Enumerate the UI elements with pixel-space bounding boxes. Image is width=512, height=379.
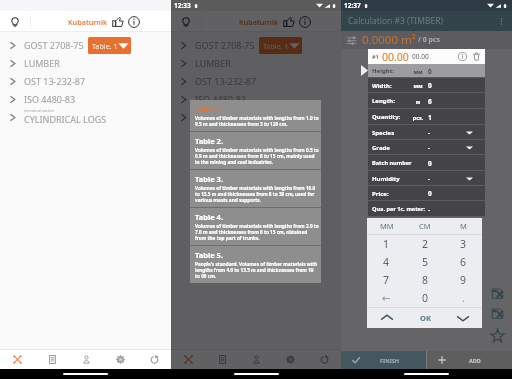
button[interactable]: MM [367, 218, 406, 234]
button[interactable]: international standard [0, 108, 171, 126]
staticText: 3 [460, 237, 467, 251]
button[interactable]: Rate [110, 14, 125, 29]
staticText: мм [408, 68, 428, 75]
button[interactable]: GOST 2708-75 [0, 36, 171, 54]
button[interactable]: LUMBER [171, 54, 341, 72]
button[interactable]: ISO 4480-83 [0, 90, 171, 108]
staticText: 0 [428, 81, 432, 90]
staticText: CM [419, 221, 431, 231]
button[interactable]: M [444, 218, 482, 234]
button[interactable]: Tips [171, 11, 201, 32]
button[interactable]: Calculate [171, 349, 205, 369]
button[interactable]: Next field [444, 308, 482, 328]
button[interactable]: History [137, 349, 171, 369]
button[interactable]: Table 5. [190, 246, 321, 283]
button[interactable]: Quantity: [368, 109, 485, 125]
button[interactable]: 4 [367, 253, 406, 271]
staticText: CYLINDRICAL LOGS [24, 113, 107, 125]
button[interactable]: Profile [239, 349, 273, 369]
button[interactable]: 2 [406, 235, 444, 253]
button[interactable]: History [307, 349, 341, 369]
staticText: Price: [372, 190, 408, 198]
button[interactable]: 0 [406, 289, 444, 307]
staticText: ISO 4480-83 [195, 93, 247, 105]
button[interactable]: Rate [281, 14, 296, 29]
button[interactable]: Saved [35, 349, 69, 369]
staticText: Humidity [372, 175, 408, 183]
button[interactable]: 3 [444, 235, 482, 253]
button[interactable]: Table 3. [190, 170, 321, 207]
button[interactable]: Species [368, 125, 485, 140]
staticText: MM [380, 221, 394, 231]
button[interactable]: Delete [471, 51, 482, 62]
button[interactable]: GOST 2708-75 [171, 36, 341, 54]
button[interactable]: Batch number [368, 155, 485, 171]
button[interactable]: 1 [367, 235, 406, 253]
button[interactable]: 7 [367, 271, 406, 289]
button[interactable]: Table 4. [190, 208, 321, 245]
staticText: OK [420, 313, 431, 323]
button[interactable]: Settings [273, 349, 307, 369]
button[interactable]: 5 [406, 253, 444, 271]
staticText: #1 [372, 53, 379, 60]
button[interactable]: Previous field [367, 308, 406, 328]
staticText: 5 [422, 255, 429, 269]
staticText: 12:37 [344, 1, 361, 10]
button[interactable]: ← [367, 289, 406, 307]
button[interactable]: 6 [444, 253, 482, 271]
staticText: People's standard. Volumes of timber mat… [195, 261, 319, 279]
button[interactable]: Add to favorites [489, 327, 505, 343]
button[interactable]: Settings [103, 349, 137, 369]
button[interactable]: OST 13-232-87 [171, 72, 341, 90]
button[interactable]: Grade [368, 140, 485, 155]
button[interactable]: 9 [444, 271, 482, 289]
staticText: Calculation #3 (TIMBER) [348, 15, 444, 27]
staticText: Species [372, 129, 408, 137]
button[interactable]: Table. 1 [88, 37, 131, 54]
button[interactable]: Length: [368, 93, 485, 109]
button[interactable]: FINISH [341, 351, 426, 369]
button[interactable]: 8 [406, 271, 444, 289]
button[interactable]: More options [493, 13, 509, 29]
button[interactable]: Saved [205, 349, 239, 369]
staticText: м [408, 98, 428, 105]
button[interactable]: Table. 1 [259, 37, 302, 54]
button[interactable]: Height: [368, 64, 485, 78]
staticText: Width: [372, 82, 408, 90]
staticText: Quantity: [372, 113, 408, 121]
staticText: Kubaturnik [239, 17, 278, 27]
button[interactable]: international standard [171, 108, 341, 126]
staticText: 6 [460, 255, 467, 269]
staticText: / 0 pcs [418, 35, 441, 45]
button[interactable]: . [444, 289, 482, 307]
button[interactable]: Info [457, 51, 468, 62]
button[interactable]: Width: [368, 78, 485, 93]
staticText: OST 13-232-87 [195, 75, 257, 87]
button[interactable]: LUMBER [0, 54, 171, 72]
button[interactable]: Table 2. [190, 132, 321, 169]
staticText: Volumes of timber materials with lengths… [195, 223, 319, 241]
button[interactable]: Info [297, 14, 312, 29]
button[interactable]: Qua. per 1c. meter: [368, 201, 485, 217]
button[interactable]: OST 13-232-87 [0, 72, 171, 90]
button[interactable]: OK [406, 308, 444, 328]
staticText: ← [382, 292, 391, 304]
button[interactable]: Export to XML [489, 305, 505, 321]
button[interactable]: CM [406, 218, 444, 234]
button[interactable]: Table 1. [190, 100, 321, 131]
button[interactable]: Humidity [368, 171, 485, 186]
button[interactable]: Profile [69, 349, 103, 369]
button[interactable]: Info [126, 14, 141, 29]
button[interactable]: Price: [368, 186, 485, 201]
button[interactable]: Export to Excel [489, 285, 505, 301]
button[interactable]: ADD [427, 351, 512, 369]
staticText: 00.00 [382, 50, 409, 64]
staticText: 12:33 [174, 1, 191, 10]
staticText: Table 4. [195, 212, 224, 222]
button[interactable]: Tips [0, 11, 30, 32]
button[interactable]: #1 [368, 49, 485, 64]
button[interactable]: Calculate [0, 349, 35, 369]
button[interactable]: ISO 4480-83 [171, 90, 341, 108]
